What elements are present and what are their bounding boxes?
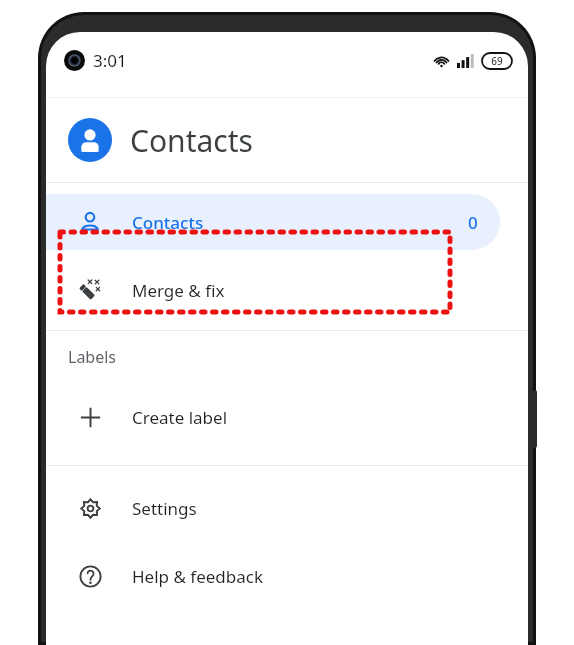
button[interactable]: Contacts xyxy=(46,194,500,250)
staticText: Settings xyxy=(132,497,197,520)
other: Settings xyxy=(79,497,102,520)
staticText: Create label xyxy=(132,406,228,429)
staticText: 69 xyxy=(491,54,503,68)
staticText: Contacts xyxy=(130,120,253,161)
button[interactable]: Merge and fix xyxy=(46,250,528,330)
other: Help and feedback xyxy=(79,565,102,588)
other: Create label xyxy=(79,406,102,429)
other: Merge and fix xyxy=(78,278,102,302)
button[interactable]: Help and feedback xyxy=(46,542,528,610)
staticText: Contacts xyxy=(132,211,204,234)
staticText: Merge & fix xyxy=(132,279,225,302)
button[interactable]: Settings xyxy=(46,474,528,542)
staticText: Labels xyxy=(68,346,117,368)
staticText: 0 xyxy=(468,211,478,234)
staticText: 3:01 xyxy=(93,49,127,72)
other: Contacts xyxy=(79,211,101,233)
button[interactable]: Create label xyxy=(46,383,528,451)
staticText: Help & feedback xyxy=(132,565,264,588)
